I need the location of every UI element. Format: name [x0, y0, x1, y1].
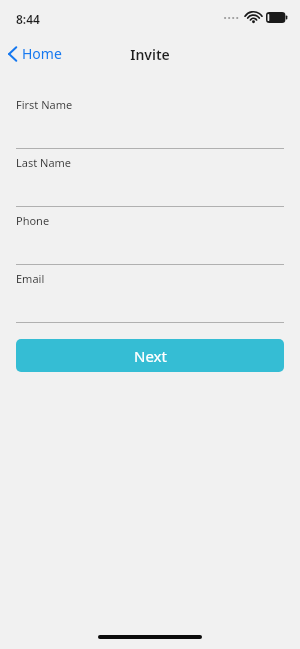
staticText: 8:44 [16, 11, 40, 27]
staticText: Phone [16, 213, 50, 228]
button[interactable]: Last Name [0, 149, 300, 207]
staticText: Last Name [16, 155, 72, 170]
staticText: Home [22, 44, 62, 63]
button[interactable]: Email [0, 265, 300, 323]
button[interactable]: Home [0, 42, 72, 67]
staticText: First Name [16, 97, 73, 112]
staticText: Email [16, 271, 45, 286]
staticText: Invite [130, 45, 170, 64]
button[interactable]: First Name [0, 91, 300, 149]
button[interactable]: Phone [0, 207, 300, 265]
button[interactable]: Next [16, 339, 284, 372]
staticText: Next [134, 346, 167, 366]
